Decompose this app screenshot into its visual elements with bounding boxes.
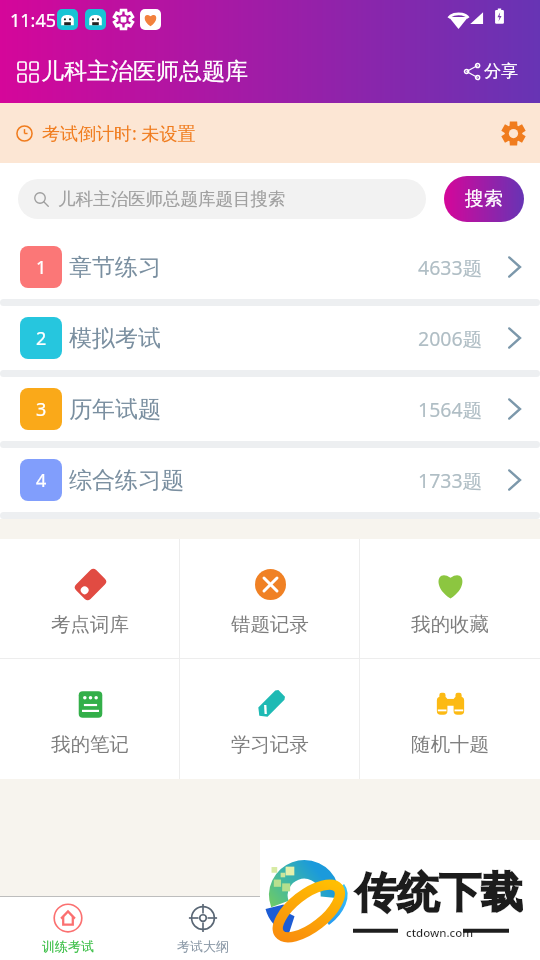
staticText: 4633题 <box>418 254 483 281</box>
button[interactable]: 随机十题 <box>360 659 540 779</box>
staticText: 模拟考试 <box>69 324 161 353</box>
button[interactable]: 2 <box>0 306 540 370</box>
staticText: 1733题 <box>418 467 483 494</box>
staticText: 搜索 <box>465 187 503 211</box>
staticText: 儿科主治医师总题库题目搜索 <box>58 188 286 210</box>
staticText: ctdown.com <box>406 925 474 941</box>
staticText: 2 <box>36 326 47 351</box>
staticText: 传统下载 <box>355 867 523 920</box>
button[interactable]: 错题记录 <box>180 539 360 658</box>
button[interactable]: 训练考试 <box>0 897 135 960</box>
button[interactable]: 学习记录 <box>180 659 360 779</box>
staticText: 历年试题 <box>69 395 161 424</box>
staticText: 我的笔记 <box>51 732 129 757</box>
staticText: 分享 <box>484 61 518 82</box>
staticText: 综合练习题 <box>69 466 184 495</box>
button[interactable]: 考试大纲 <box>135 897 270 960</box>
staticText: 训练考试 <box>42 938 94 954</box>
button[interactable]: 1 <box>0 235 540 299</box>
staticText: 4 <box>36 468 47 493</box>
staticText: 2006题 <box>418 325 483 352</box>
staticText: 1 <box>36 255 47 280</box>
staticText: 学习记录 <box>231 732 309 757</box>
button[interactable]: 4 <box>0 448 540 512</box>
button[interactable]: Settings <box>496 116 530 150</box>
staticText: 考试倒计时: 未设置 <box>42 121 196 146</box>
button[interactable]: 搜索 <box>444 176 524 222</box>
staticText: 11:45 <box>10 8 57 33</box>
staticText: 考点词库 <box>51 612 129 637</box>
staticText: 儿科主治医师总题库 <box>41 57 248 86</box>
button[interactable]: 儿科主治医师总题库题目搜索 <box>18 179 426 219</box>
staticText: 随机十题 <box>411 732 489 757</box>
button[interactable]: 3 <box>0 377 540 441</box>
staticText: 章节练习 <box>69 253 161 282</box>
button[interactable]: 分享 <box>460 57 522 86</box>
staticText: 3 <box>36 397 47 422</box>
button[interactable]: 我的笔记 <box>0 659 180 779</box>
staticText: 考试大纲 <box>177 938 229 954</box>
staticText: 我的收藏 <box>411 612 489 637</box>
button[interactable]: 我的收藏 <box>360 539 540 658</box>
staticText: 1564题 <box>418 396 483 423</box>
button[interactable]: 考点词库 <box>0 539 180 658</box>
staticText: 错题记录 <box>231 612 309 637</box>
